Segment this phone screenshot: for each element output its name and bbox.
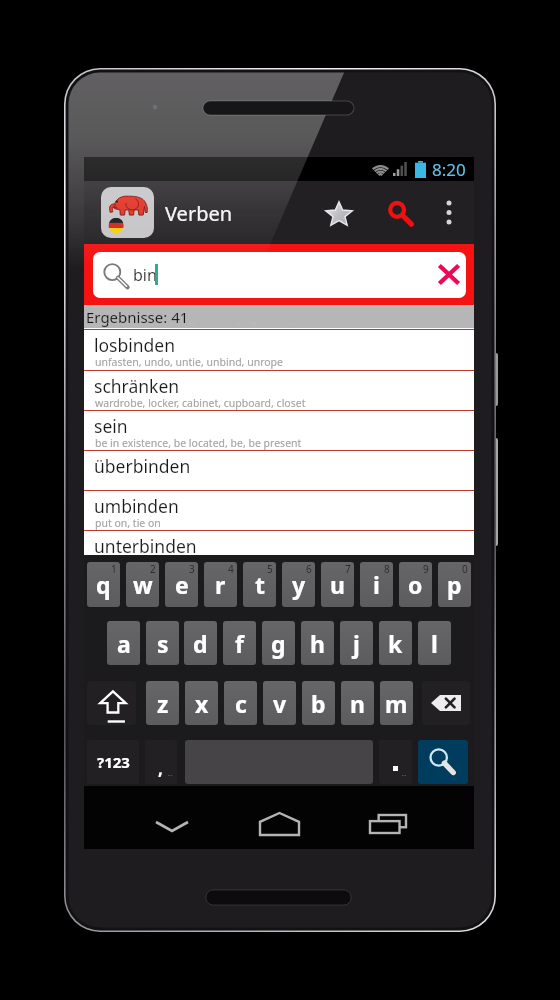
staticText: k xyxy=(388,628,403,659)
staticText: m xyxy=(385,688,408,719)
staticText: c xyxy=(235,688,247,719)
button[interactable]: g xyxy=(262,621,295,665)
button[interactable]: k xyxy=(379,621,412,665)
staticText: t xyxy=(255,569,265,600)
button[interactable]: f xyxy=(223,621,256,665)
button[interactable]: unterbinden xyxy=(84,531,474,570)
button[interactable]: Search field xyxy=(93,252,466,298)
staticText: s xyxy=(157,628,169,659)
staticText: 5 xyxy=(267,562,273,576)
staticText: x xyxy=(195,688,209,719)
button[interactable]: l xyxy=(418,621,451,665)
button[interactable]: Search xyxy=(377,192,421,236)
staticText: f xyxy=(235,628,244,659)
button[interactable]: a xyxy=(107,621,140,665)
button[interactable]: d xyxy=(184,621,217,665)
staticText: y xyxy=(292,569,306,600)
staticText: n xyxy=(350,688,365,719)
staticText: g xyxy=(271,628,286,659)
staticText: 9 xyxy=(423,562,429,576)
staticText: 8 xyxy=(384,562,390,576)
staticText: Ergebnisse: 41 xyxy=(86,307,189,327)
staticText: umbinden xyxy=(94,494,179,518)
staticText: be in existence, be located, be, be pres… xyxy=(95,436,302,450)
button[interactable]: Favorites xyxy=(317,192,361,236)
button[interactable]: t xyxy=(243,562,276,607)
button[interactable]: u xyxy=(321,562,354,607)
staticText: j xyxy=(353,628,360,659)
button[interactable]: z xyxy=(146,681,179,725)
staticText: anbinden, anschnallen, verschnüren, anke… xyxy=(95,320,324,324)
button[interactable]: p xyxy=(438,562,471,607)
button[interactable]: Clear search xyxy=(429,255,469,295)
staticText: schränken xyxy=(94,374,180,398)
button[interactable]: Backspace xyxy=(422,681,470,725)
staticText: 0 xyxy=(462,562,468,576)
staticText: h xyxy=(310,628,325,659)
staticText: unfasten, undo, untie, unbind, unrope xyxy=(95,355,284,369)
button[interactable]: r xyxy=(204,562,237,607)
staticText: 7 xyxy=(345,562,351,576)
staticText: , xyxy=(158,757,163,780)
button[interactable]: w xyxy=(126,562,159,607)
staticText: ... xyxy=(402,771,407,778)
staticText: o xyxy=(408,569,423,600)
button[interactable]: y xyxy=(282,562,315,607)
button[interactable]: v xyxy=(263,681,296,725)
button[interactable]: sein xyxy=(84,411,474,450)
button[interactable]: q xyxy=(87,562,120,607)
staticText: bin xyxy=(133,264,157,286)
staticText: 1 xyxy=(111,562,117,576)
button[interactable]: Shift xyxy=(87,681,136,725)
button[interactable]: umbinden xyxy=(84,491,474,530)
staticText: sein xyxy=(94,414,128,438)
staticText: u xyxy=(330,569,345,600)
button[interactable]: i xyxy=(360,562,393,607)
staticText: p xyxy=(447,569,462,600)
button[interactable]: s xyxy=(146,621,179,665)
staticText: wardrobe, locker, cabinet, cupboard, clo… xyxy=(95,396,306,410)
staticText: 4 xyxy=(228,562,234,576)
button[interactable]: n xyxy=(341,681,374,725)
button[interactable]: App icon xyxy=(101,187,154,238)
button[interactable]: o xyxy=(399,562,432,607)
button[interactable]: Search xyxy=(418,740,468,784)
button[interactable]: überbinden xyxy=(84,451,474,490)
button[interactable]: m xyxy=(380,681,413,725)
button[interactable]: losbinden xyxy=(84,330,474,369)
staticText: l xyxy=(431,628,438,659)
button[interactable]: c xyxy=(224,681,257,725)
button[interactable]: x xyxy=(185,681,218,725)
button[interactable]: schränken xyxy=(84,371,474,410)
button[interactable]: e xyxy=(165,562,198,607)
button[interactable]: Hide keyboard xyxy=(128,786,216,849)
staticText: überbinden xyxy=(94,454,191,478)
staticText: 8:20 xyxy=(432,158,466,181)
staticText: 2 xyxy=(150,562,156,576)
staticText: b xyxy=(311,688,326,719)
staticText: i xyxy=(373,569,380,600)
button[interactable]: Symbols xyxy=(87,740,139,784)
button[interactable]: Home xyxy=(235,786,323,849)
staticText: w xyxy=(133,569,153,600)
button[interactable]: More options xyxy=(431,191,467,235)
staticText: v xyxy=(273,688,287,719)
staticText: d xyxy=(193,628,208,659)
staticText: q xyxy=(96,569,111,600)
button[interactable]: j xyxy=(340,621,373,665)
button[interactable]: b xyxy=(302,681,335,725)
button[interactable]: Period xyxy=(379,740,412,784)
staticText: z xyxy=(157,688,169,719)
staticText: a xyxy=(117,628,131,659)
button[interactable]: h xyxy=(301,621,334,665)
button[interactable]: Recent apps xyxy=(344,786,432,849)
button[interactable]: Comma xyxy=(145,740,177,784)
staticText: ?123 xyxy=(97,752,130,772)
staticText: e xyxy=(175,569,189,600)
staticText: 6 xyxy=(306,562,312,576)
staticText: ... xyxy=(168,771,173,778)
staticText: put on, tie on xyxy=(95,516,161,530)
staticText: 3 xyxy=(189,562,195,576)
staticText: unterbinden xyxy=(94,534,197,558)
